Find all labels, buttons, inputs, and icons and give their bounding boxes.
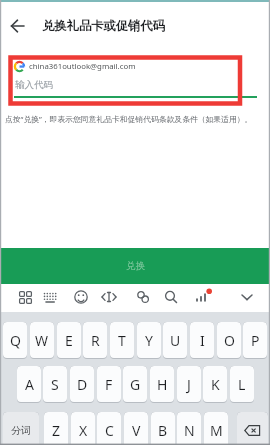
staticText: C <box>105 421 114 440</box>
staticText: U <box>170 331 181 350</box>
button[interactable] <box>237 412 268 445</box>
staticText: D <box>77 375 88 394</box>
staticText: S <box>51 375 59 394</box>
staticText: G <box>130 375 141 394</box>
staticText: W <box>35 331 49 350</box>
staticText: B <box>158 421 168 440</box>
button[interactable]: U <box>163 322 187 359</box>
button[interactable]: G <box>123 366 147 403</box>
staticText: I <box>200 331 205 350</box>
button[interactable]: C <box>97 412 121 445</box>
button[interactable]: R <box>83 322 107 359</box>
staticText: P <box>251 331 260 350</box>
staticText: 分词 <box>11 424 31 437</box>
button[interactable] <box>190 285 214 309</box>
button[interactable]: E <box>57 322 81 359</box>
button[interactable] <box>97 285 121 309</box>
button[interactable]: Y <box>137 322 161 359</box>
staticText: T <box>118 331 126 350</box>
staticText: R <box>91 331 100 350</box>
staticText: 兑换礼品卡或促销代码 <box>42 18 165 33</box>
button[interactable] <box>131 285 155 309</box>
button[interactable]: X <box>71 412 95 445</box>
button[interactable]: L <box>230 366 254 403</box>
button[interactable]: I <box>190 322 214 359</box>
staticText: K <box>211 375 220 394</box>
staticText: M <box>210 421 223 440</box>
staticText: A <box>25 375 34 394</box>
staticText: V <box>132 421 141 440</box>
staticText: J <box>187 375 191 394</box>
button[interactable]: F <box>97 366 121 403</box>
button[interactable] <box>13 58 233 74</box>
button[interactable]: N <box>177 412 201 445</box>
button[interactable]: J <box>177 366 201 403</box>
staticText: X <box>79 421 88 440</box>
button[interactable] <box>69 285 93 309</box>
staticText: E <box>65 331 73 350</box>
button[interactable] <box>14 77 257 98</box>
button[interactable] <box>38 285 62 309</box>
button[interactable] <box>14 285 38 309</box>
button[interactable] <box>235 285 259 309</box>
staticText: N <box>184 421 195 440</box>
staticText: H <box>157 375 168 394</box>
button[interactable]: 兑换 <box>0 248 270 284</box>
button[interactable]: H <box>150 366 174 403</box>
button[interactable]: P <box>243 322 267 359</box>
button[interactable]: Z <box>44 412 68 445</box>
staticText: china361outlook@gmail.com <box>29 61 136 72</box>
button[interactable]: O <box>217 322 241 359</box>
staticText: 输入代码 <box>15 79 53 91</box>
button[interactable]: B <box>151 412 175 445</box>
button[interactable]: V <box>124 412 148 445</box>
staticText: 兑换 <box>126 260 145 272</box>
button[interactable]: S <box>43 366 67 403</box>
button[interactable]: W <box>30 322 54 359</box>
button[interactable]: Q <box>3 322 27 359</box>
staticText: Z <box>52 421 61 440</box>
staticText: O <box>224 331 235 350</box>
staticText: 点按“兑换”，即表示您同意礼品卡和促销代码条款及条件（如果适用）。 <box>5 114 253 125</box>
button[interactable] <box>10 19 26 35</box>
staticText: F <box>105 375 113 394</box>
staticText: Q <box>10 331 21 350</box>
button[interactable]: T <box>110 322 134 359</box>
button[interactable]: 分词 <box>3 412 39 445</box>
button[interactable]: M <box>204 412 228 445</box>
staticText: Y <box>145 331 153 350</box>
button[interactable]: K <box>203 366 227 403</box>
button[interactable]: D <box>70 366 94 403</box>
staticText: L <box>238 375 246 394</box>
button[interactable] <box>159 285 183 309</box>
button[interactable]: A <box>17 366 41 403</box>
